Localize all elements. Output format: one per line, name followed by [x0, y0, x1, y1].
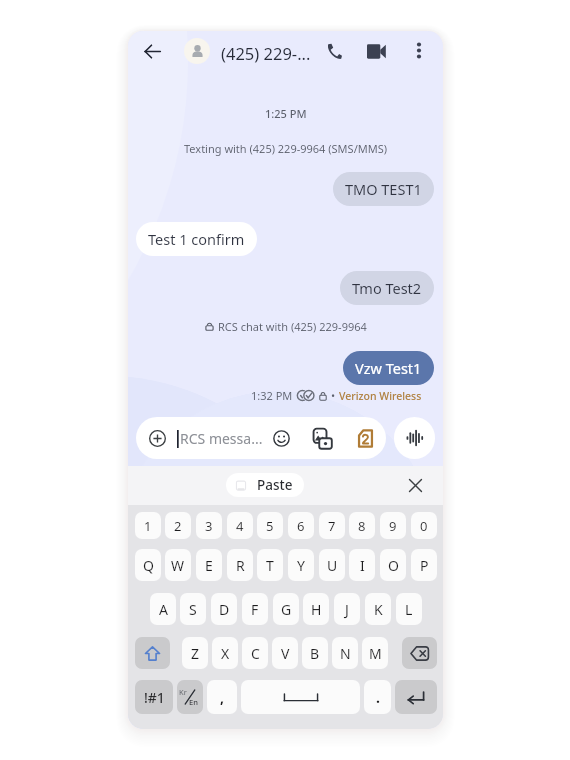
button[interactable]: Voice message [394, 417, 435, 459]
staticText: En [189, 697, 198, 707]
button[interactable]: Test 1 confirm [136, 222, 257, 256]
staticText: L [405, 600, 413, 619]
staticText: RCS chat with (425) 229-9964 [218, 319, 367, 334]
staticText: W [171, 556, 185, 575]
staticText: S [189, 600, 197, 619]
button[interactable]: 9 [380, 512, 406, 539]
button[interactable]: X [212, 637, 238, 669]
button[interactable]: Contact avatar [184, 38, 210, 64]
button[interactable]: More options [406, 38, 431, 63]
button[interactable]: H [303, 593, 329, 625]
button[interactable]: A [150, 593, 176, 625]
staticText: G [281, 600, 292, 619]
staticText: 8 [358, 517, 366, 535]
button[interactable]: Video call [362, 37, 390, 65]
staticText: E [205, 556, 213, 575]
staticText: 3 [205, 517, 213, 535]
button[interactable]: Z [182, 637, 208, 669]
staticText: U [327, 556, 338, 575]
button[interactable]: TMO TEST1 [333, 172, 434, 206]
staticText: 1 [144, 517, 152, 535]
button[interactable]: S [180, 593, 206, 625]
staticText: B [310, 644, 320, 663]
button[interactable]: R [227, 549, 253, 581]
button[interactable]: D [211, 593, 237, 625]
button[interactable]: 2 [165, 512, 191, 539]
button[interactable]: I [349, 549, 375, 581]
staticText: A [159, 600, 168, 619]
staticText: Q [143, 556, 154, 575]
button[interactable]: Close [403, 473, 427, 497]
staticText: . [376, 688, 380, 707]
staticText: V [281, 644, 290, 663]
staticText: 7 [328, 517, 336, 535]
button[interactable]: Tmo Test2 [340, 271, 434, 305]
button[interactable]: Q [135, 549, 161, 581]
staticText: 5 [266, 517, 274, 535]
button[interactable]: U [319, 549, 345, 581]
button[interactable]: Gallery [313, 417, 332, 459]
staticText: !#1 [144, 688, 165, 707]
button[interactable]: T [257, 549, 283, 581]
button[interactable]: 4 [227, 512, 253, 539]
button[interactable]: E [196, 549, 222, 581]
button[interactable]: 7 [319, 512, 345, 539]
staticText: C [251, 644, 260, 663]
staticText: 9 [389, 517, 397, 535]
button[interactable]: SIM 2 [358, 417, 373, 459]
button[interactable]: Paste [226, 473, 304, 497]
staticText: (425) 229-... [221, 42, 311, 64]
staticText: X [221, 644, 230, 663]
button[interactable]: 8 [349, 512, 375, 539]
button[interactable]: . [364, 680, 391, 714]
button[interactable]: C [242, 637, 268, 669]
staticText: Y [297, 556, 305, 575]
staticText: T [266, 556, 274, 575]
button[interactable]: Enter [395, 680, 437, 714]
staticText: Vzw Test1 [355, 358, 422, 378]
button[interactable]: Backspace [402, 637, 437, 669]
button[interactable]: K [365, 593, 391, 625]
button[interactable]: P [411, 549, 437, 581]
staticText: K [374, 600, 383, 619]
button[interactable]: , [207, 680, 237, 714]
staticText: N [340, 644, 351, 663]
button[interactable]: Emoji [273, 417, 290, 459]
staticText: 0 [420, 517, 428, 535]
button[interactable]: Y [288, 549, 314, 581]
staticText: TMO TEST1 [345, 179, 422, 199]
button[interactable]: O [380, 549, 406, 581]
button[interactable]: 6 [288, 512, 314, 539]
staticText: J [345, 600, 349, 619]
button[interactable]: Call [320, 37, 348, 65]
staticText: F [251, 600, 259, 619]
button[interactable]: F [242, 593, 268, 625]
button[interactable]: M [362, 637, 388, 669]
button[interactable]: G [273, 593, 299, 625]
button[interactable]: Vzw Test1 [343, 351, 434, 385]
button[interactable]: Switch language [177, 680, 203, 714]
button[interactable]: W [165, 549, 191, 581]
staticText: , [220, 688, 224, 707]
button[interactable]: Space [241, 680, 360, 714]
button[interactable]: V [272, 637, 298, 669]
button[interactable]: 3 [196, 512, 222, 539]
staticText: P [420, 556, 429, 575]
staticText: Kr [179, 687, 187, 697]
button[interactable]: J [334, 593, 360, 625]
staticText: Verizon Wireless [339, 389, 422, 403]
staticText: RCS messa... [180, 429, 263, 448]
staticText: H [311, 600, 322, 619]
button[interactable]: B [302, 637, 328, 669]
button[interactable]: !#1 [135, 680, 173, 714]
button[interactable]: RCS messa... [136, 417, 386, 459]
button[interactable]: 5 [257, 512, 283, 539]
staticText: Texting with (425) 229-9964 (SMS/MMS) [184, 141, 388, 156]
button[interactable]: Shift [135, 637, 170, 669]
staticText: M [369, 644, 382, 663]
button[interactable]: Back [138, 37, 167, 66]
button[interactable]: N [332, 637, 358, 669]
button[interactable]: 0 [411, 512, 437, 539]
button[interactable]: 1 [135, 512, 161, 539]
button[interactable]: L [396, 593, 422, 625]
